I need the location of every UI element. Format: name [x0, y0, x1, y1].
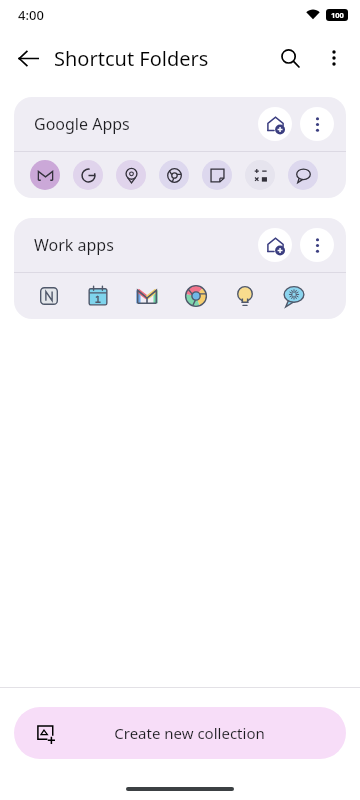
button[interactable]: Search — [268, 36, 312, 80]
button[interactable]: App shortcut — [116, 160, 146, 190]
button[interactable]: App shortcut — [288, 160, 318, 190]
button[interactable]: More options — [312, 36, 356, 80]
button[interactable]: Add to home screen — [258, 228, 292, 262]
button[interactable]: Back — [6, 36, 50, 80]
button[interactable]: Folder options — [300, 228, 334, 262]
staticText: Create new collection — [114, 723, 265, 743]
button[interactable]: App shortcut — [230, 281, 260, 311]
button[interactable]: App shortcut — [245, 160, 275, 190]
button[interactable]: App shortcut — [30, 160, 60, 190]
button[interactable]: App shortcut — [279, 281, 309, 311]
staticText: Work apps — [34, 234, 114, 256]
button[interactable]: App shortcut — [159, 160, 189, 190]
button[interactable]: Add to home screen — [258, 107, 292, 141]
button[interactable]: App shortcut — [83, 281, 113, 311]
staticText: 100 — [331, 10, 344, 20]
staticText: Shortcut Folders — [54, 45, 209, 72]
button[interactable]: App shortcut — [132, 281, 162, 311]
button[interactable]: Create new collection — [14, 707, 346, 759]
button[interactable]: App shortcut — [181, 281, 211, 311]
button[interactable]: App shortcut — [202, 160, 232, 190]
button[interactable]: App shortcut — [34, 281, 64, 311]
staticText: Google Apps — [34, 113, 130, 135]
button[interactable]: Google Apps — [14, 97, 346, 151]
button[interactable]: Folder options — [300, 107, 334, 141]
staticText: 4:00 — [18, 6, 44, 24]
button[interactable]: App shortcut — [73, 160, 103, 190]
button[interactable]: Work apps — [14, 218, 346, 272]
